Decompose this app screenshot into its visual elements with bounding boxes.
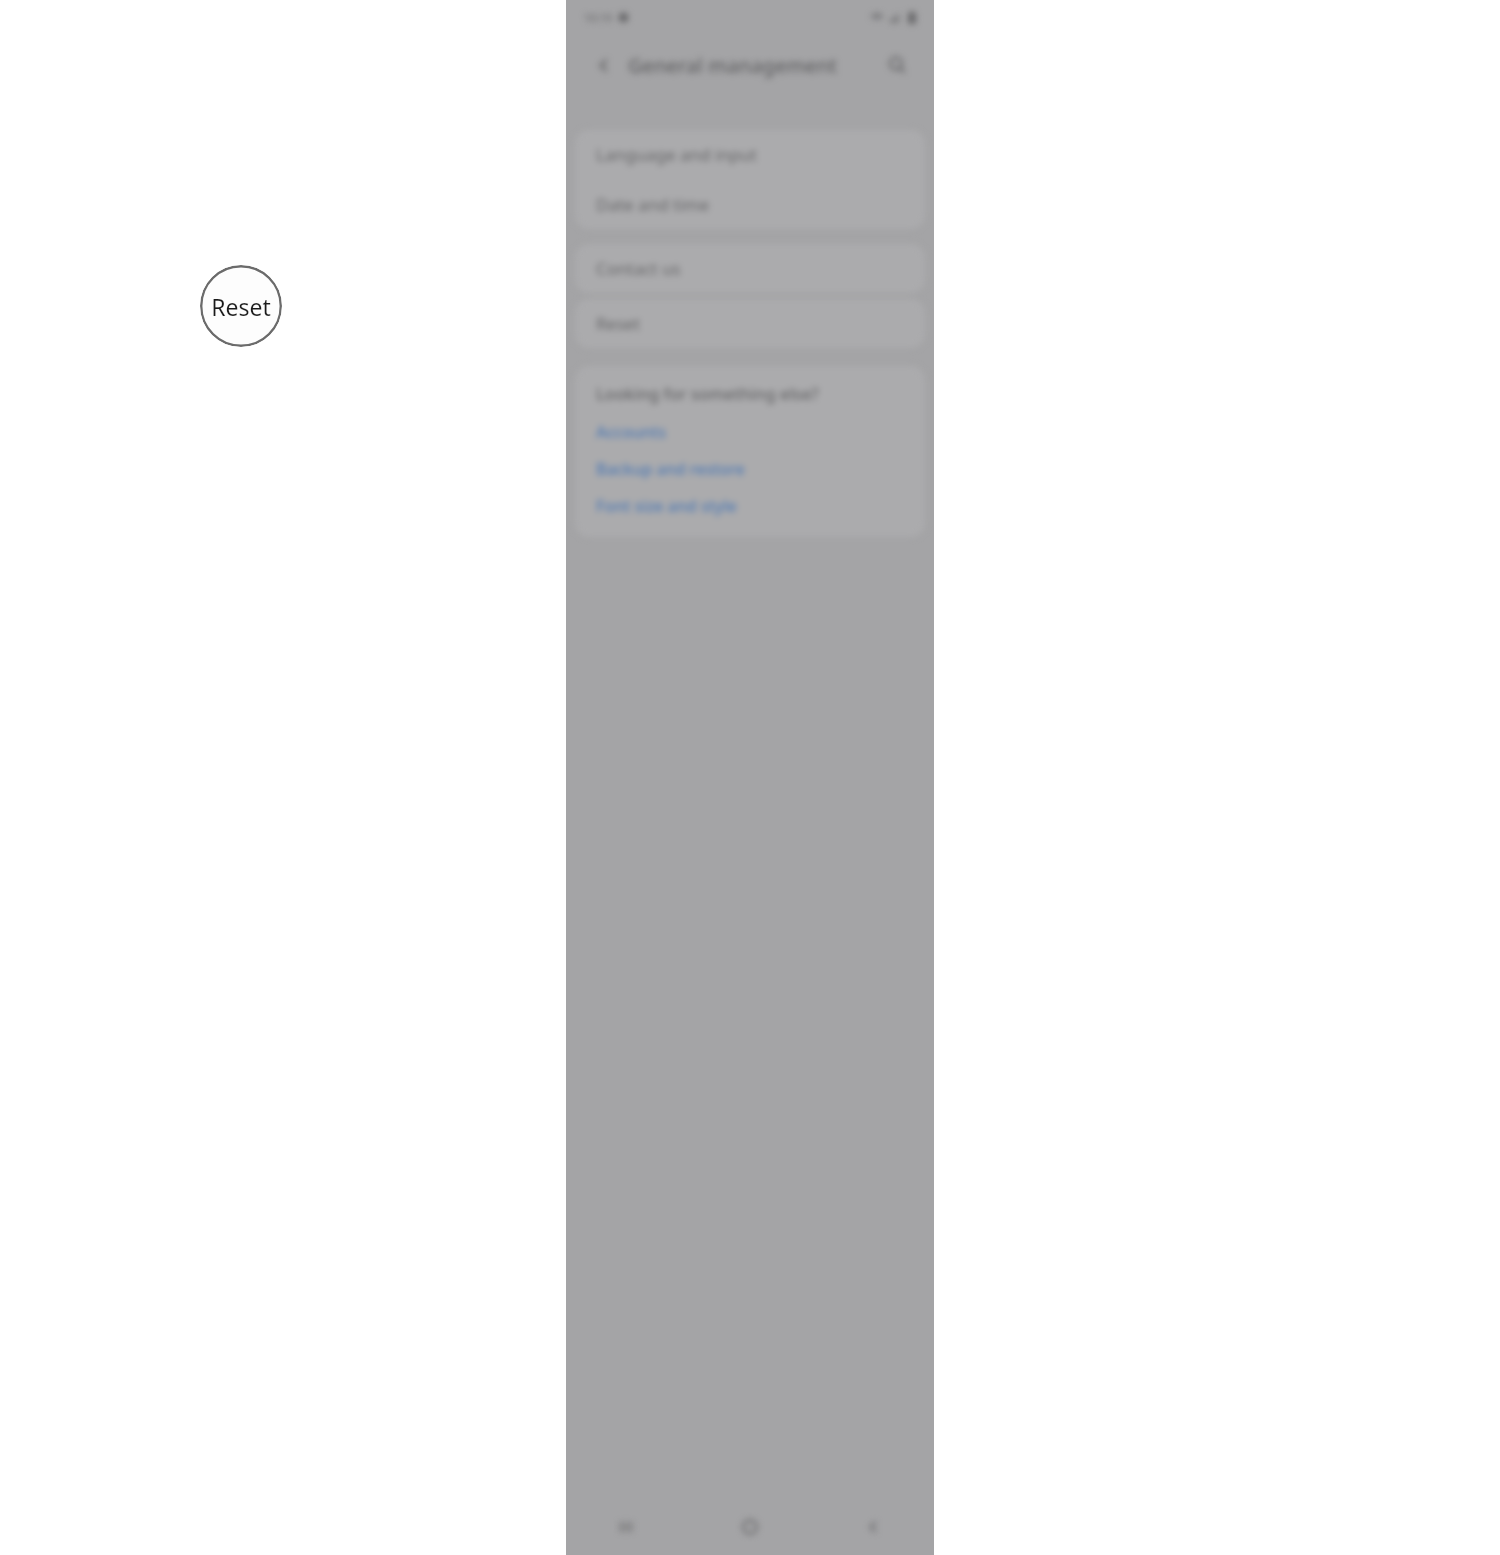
staticText: Looking for something else? — [596, 382, 819, 404]
button[interactable]: Back — [588, 50, 618, 80]
staticText: Backup and restore — [596, 458, 745, 480]
staticText: Reset — [596, 312, 641, 335]
button[interactable]: Reset — [575, 299, 925, 348]
staticText: Date and time — [596, 193, 710, 216]
button[interactable]: Contact us — [575, 244, 925, 293]
staticText: Accounts — [596, 421, 666, 443]
staticText: 10:19 — [584, 10, 613, 25]
button[interactable]: Date and time — [575, 180, 925, 229]
button[interactable]: Accounts — [596, 421, 666, 443]
button[interactable]: Reset — [200, 265, 282, 347]
staticText: Contact us — [596, 257, 681, 280]
button[interactable]: Font size and style — [596, 495, 737, 517]
button[interactable]: Backup and restore — [596, 458, 745, 480]
button[interactable]: Language and input — [575, 130, 925, 179]
staticText: General management — [628, 52, 837, 79]
button[interactable]: Home — [688, 1499, 811, 1555]
button[interactable]: Search — [882, 50, 912, 80]
staticText: Font size and style — [596, 495, 737, 517]
staticText: Language and input — [596, 143, 757, 166]
staticText: Reset — [211, 291, 271, 322]
